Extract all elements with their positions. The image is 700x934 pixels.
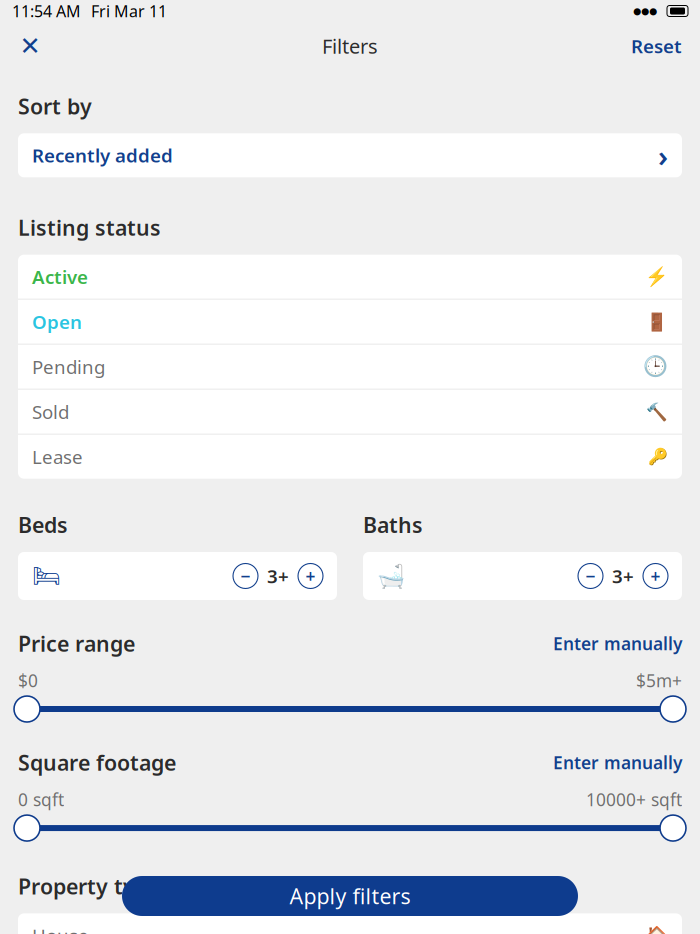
staticText: + bbox=[650, 564, 660, 587]
staticText: 🔨 bbox=[646, 402, 668, 422]
button[interactable]: Close filters bbox=[8, 24, 52, 68]
staticText: Sort by bbox=[18, 92, 92, 120]
staticText: ✕ bbox=[19, 32, 40, 60]
staticText: 3+ bbox=[612, 564, 634, 588]
staticText: 10000+ sqft bbox=[586, 788, 682, 811]
staticText: $0 bbox=[18, 669, 38, 692]
button[interactable]: Slider handle bbox=[660, 696, 686, 722]
staticText: Beds bbox=[18, 511, 68, 539]
staticText: Sold bbox=[32, 399, 69, 424]
staticText: House bbox=[32, 923, 89, 934]
button[interactable]: Recently added bbox=[18, 133, 682, 177]
button[interactable]: Increase bbox=[298, 563, 323, 588]
button[interactable]: Decrease bbox=[578, 563, 603, 588]
staticText: ⚡ bbox=[645, 266, 668, 287]
staticText: Fri Mar 11 bbox=[91, 0, 167, 22]
button[interactable]: Slider handle bbox=[14, 696, 40, 722]
staticText: Lease bbox=[32, 444, 83, 469]
staticText: + bbox=[305, 564, 315, 587]
staticText: 🛁 bbox=[377, 563, 405, 589]
button[interactable]: Decrease bbox=[233, 563, 258, 588]
button[interactable]: Lease bbox=[18, 435, 682, 479]
staticText: − bbox=[240, 564, 250, 587]
button[interactable]: Slider handle bbox=[14, 815, 40, 841]
staticText: 11:54 AM bbox=[12, 0, 81, 22]
staticText: Recently added bbox=[32, 143, 173, 168]
staticText: Apply filters bbox=[289, 882, 410, 910]
button[interactable]: House bbox=[18, 913, 682, 934]
button[interactable]: Open bbox=[18, 300, 682, 345]
button[interactable]: Slider handle bbox=[660, 815, 686, 841]
staticText: › bbox=[658, 136, 668, 175]
button[interactable]: Increase bbox=[643, 563, 668, 588]
button[interactable]: Pending bbox=[18, 345, 682, 390]
staticText: 🕒 bbox=[643, 355, 668, 378]
staticText: Enter manually bbox=[553, 632, 682, 655]
button[interactable]: Apply filters bbox=[122, 876, 578, 916]
button[interactable]: Enter manually bbox=[553, 747, 682, 778]
staticText: Pending bbox=[32, 354, 105, 379]
staticText: 🏠 bbox=[646, 925, 668, 934]
staticText: 3+ bbox=[267, 564, 289, 588]
staticText: Listing status bbox=[18, 213, 161, 242]
staticText: Enter manually bbox=[553, 751, 682, 774]
staticText: 🛏 bbox=[32, 563, 61, 589]
button[interactable]: Active bbox=[18, 255, 682, 300]
staticText: $5m+ bbox=[636, 669, 682, 692]
staticText: Baths bbox=[363, 511, 423, 539]
button[interactable]: Sold bbox=[18, 390, 682, 435]
staticText: − bbox=[585, 564, 595, 587]
staticText: 0 sqft bbox=[18, 788, 64, 811]
button[interactable]: Enter manually bbox=[553, 628, 682, 659]
staticText: Price range bbox=[18, 629, 135, 658]
staticText: Open bbox=[32, 309, 82, 334]
staticText: 🔑 bbox=[648, 447, 668, 466]
button[interactable]: Reset bbox=[621, 24, 692, 68]
staticText: Reset bbox=[631, 34, 682, 58]
staticText: 🚪 bbox=[646, 312, 668, 332]
staticText: Filters bbox=[322, 33, 378, 59]
staticText: Square footage bbox=[18, 748, 176, 777]
staticText: Active bbox=[32, 264, 88, 289]
staticText: ●●● bbox=[633, 6, 657, 16]
staticText: Property type bbox=[18, 872, 160, 900]
